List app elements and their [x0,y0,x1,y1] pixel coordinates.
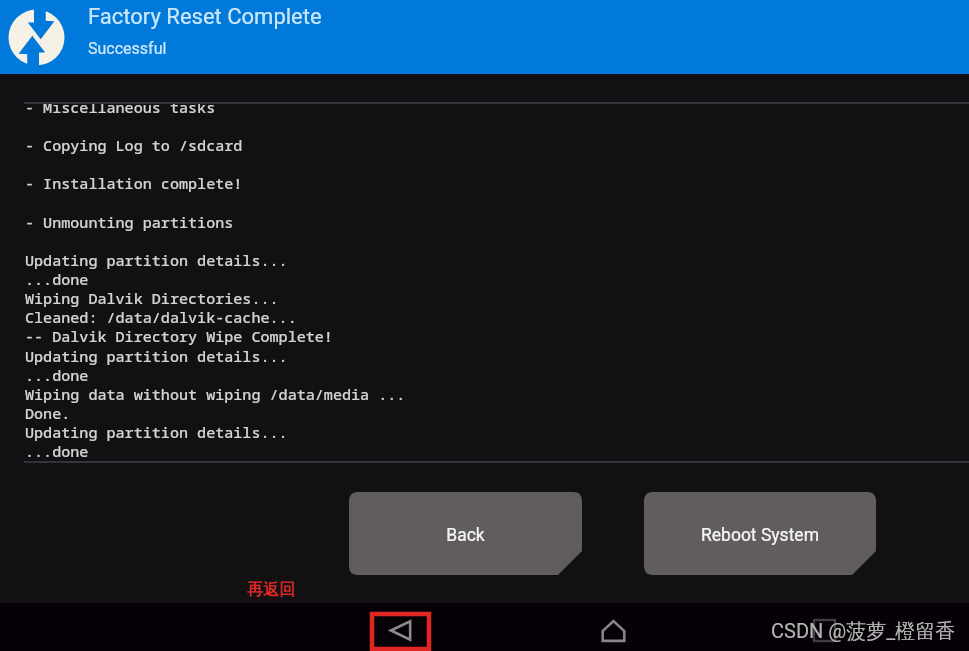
staticText: - Miscellaneous tasks [25,97,216,118]
staticText: Updating partition details... [25,250,288,271]
button[interactable]: Home [602,620,625,642]
staticText: CSDN @菠萝_橙留香 [771,619,956,644]
staticText: -- Dalvik Directory Wipe Complete! [25,326,333,347]
staticText: ...done [25,269,89,290]
button[interactable]: Back [389,620,412,641]
staticText: Updating partition details... [25,422,288,443]
staticText: - Copying Log to /sdcard [25,135,243,156]
staticText: ...done [25,441,89,462]
button[interactable]: Reboot System [644,492,876,575]
staticText: Done. [25,403,71,424]
staticText: - Unmounting partitions [25,212,234,233]
staticText: Back [446,525,485,546]
button[interactable]: Back [349,492,582,575]
staticText: Updating partition details... [25,346,288,367]
staticText: 再返回 [247,580,295,600]
staticText: Wiping data without wiping /data/media .… [25,384,406,405]
staticText: Factory Reset Complete [88,4,322,30]
button[interactable]: Recent apps [814,620,835,641]
staticText: Wiping Dalvik Directories... [25,288,279,309]
staticText: ...done [25,365,89,386]
staticText: Successful [88,39,167,58]
staticText: Cleaned: /data/dalvik-cache... [25,307,297,328]
staticText: - Installation complete! [25,173,243,194]
staticText: Reboot System [701,525,819,546]
